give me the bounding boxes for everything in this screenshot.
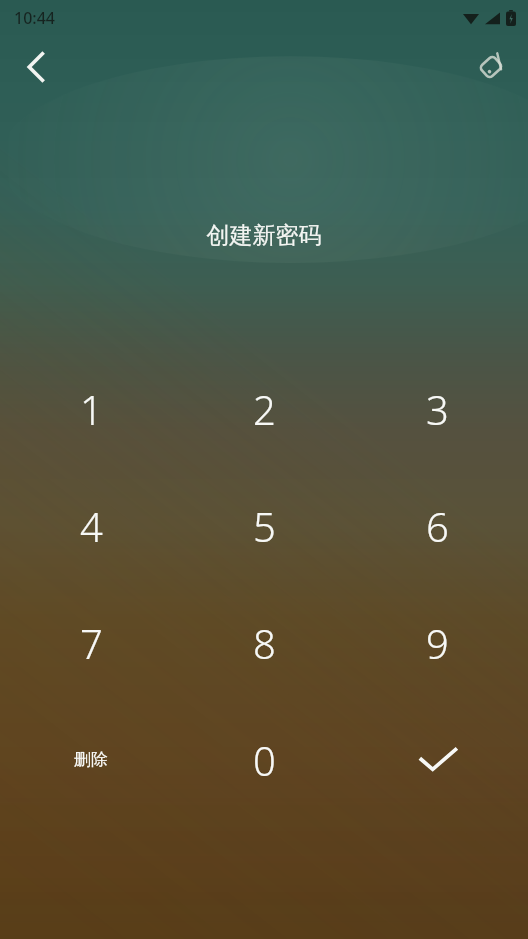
button[interactable]: 6 xyxy=(351,467,524,584)
button[interactable]: 0 xyxy=(178,701,351,818)
button[interactable]: Confirm xyxy=(351,701,524,818)
button[interactable]: 1 xyxy=(4,350,178,467)
button[interactable]: 8 xyxy=(178,584,351,701)
button[interactable]: 删除 xyxy=(4,701,178,818)
staticText: 7 xyxy=(80,616,103,670)
staticText: 创建新密码 xyxy=(0,221,528,250)
button[interactable]: 4 xyxy=(4,467,178,584)
staticText: 1 xyxy=(80,382,103,436)
staticText: 3 xyxy=(426,382,449,436)
button[interactable]: 3 xyxy=(351,350,524,467)
staticText: 删除 xyxy=(74,749,108,770)
button[interactable]: Rotate screen xyxy=(466,42,516,92)
staticText: 4 xyxy=(80,499,103,553)
staticText: 8 xyxy=(253,616,276,670)
staticText: 0 xyxy=(253,733,276,787)
staticText: 2 xyxy=(253,382,276,436)
staticText: 10:44 xyxy=(14,7,55,29)
button[interactable]: 2 xyxy=(178,350,351,467)
staticText: 6 xyxy=(426,499,449,553)
button[interactable]: 7 xyxy=(4,584,178,701)
button[interactable]: 9 xyxy=(351,584,524,701)
staticText: 5 xyxy=(253,499,276,553)
button[interactable]: 5 xyxy=(178,467,351,584)
staticText: 9 xyxy=(426,616,449,670)
button[interactable]: Back xyxy=(10,41,62,93)
